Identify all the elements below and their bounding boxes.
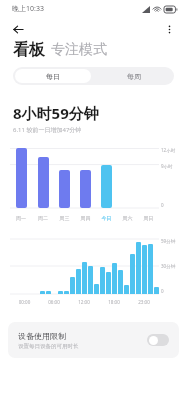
staticText: 周三 (54, 215, 75, 221)
button[interactable] (59, 170, 70, 208)
button[interactable]: 每日 (15, 69, 91, 83)
staticText: 12小时 (161, 147, 176, 153)
staticText: 每日 (46, 72, 60, 81)
staticText: 8小时59分钟 (13, 103, 99, 123)
staticText: 设置每日设备的可用时长 (18, 343, 79, 350)
staticText: 今日 (96, 215, 117, 221)
button[interactable]: More options (158, 18, 180, 40)
staticText: 设备使用限制 (18, 331, 66, 341)
staticText: 周二 (32, 215, 54, 221)
staticText: 18:00 (99, 299, 129, 305)
staticText: 00:00 (10, 299, 39, 305)
staticText: 看板 (13, 40, 45, 60)
staticText: 9小时 (161, 163, 173, 169)
button[interactable] (101, 165, 112, 208)
staticText: 周四 (75, 215, 96, 221)
button[interactable]: Back (7, 18, 29, 40)
staticText: 每周 (127, 72, 141, 81)
staticText: 23:00 (129, 299, 159, 305)
staticText: 周一 (10, 215, 32, 221)
button[interactable] (16, 148, 27, 208)
staticText: 59分钟 (161, 238, 176, 244)
staticText: 06:00 (39, 299, 69, 305)
button[interactable] (80, 170, 91, 208)
staticText: 晚上10:33 (12, 4, 44, 14)
button[interactable]: 每周 (93, 67, 174, 85)
staticText: 6.11 较前一日增加47分钟 (13, 126, 82, 134)
button[interactable]: Toggle device usage limit (147, 334, 169, 346)
staticText: 0 (161, 288, 164, 294)
button[interactable]: 专注模式 (51, 41, 107, 59)
staticText: 0 (161, 202, 164, 208)
staticText: 30分钟 (161, 263, 176, 269)
staticText: 12:00 (69, 299, 99, 305)
staticText: 周日 (138, 215, 159, 221)
button[interactable] (38, 157, 49, 208)
button[interactable]: 设备使用限制 (8, 322, 179, 358)
staticText: 周六 (117, 215, 138, 221)
